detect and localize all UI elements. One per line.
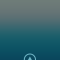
button[interactable]: Scroll to top <box>0 0 60 60</box>
